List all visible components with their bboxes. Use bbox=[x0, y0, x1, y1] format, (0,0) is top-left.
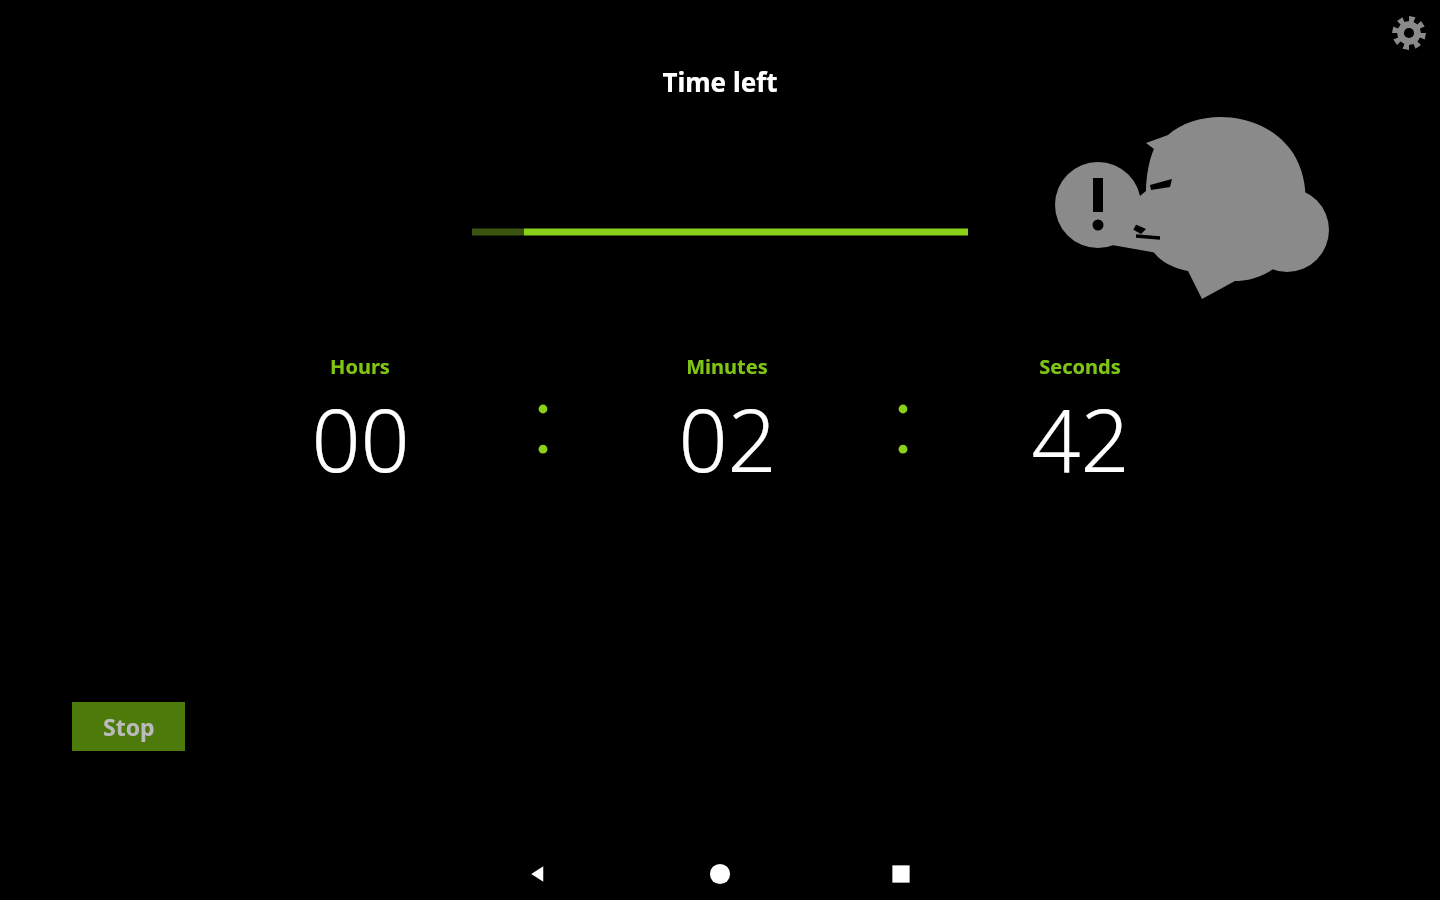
button[interactable]: Settings bbox=[1385, 9, 1433, 57]
other: Speak time bbox=[1050, 105, 1335, 300]
staticText: Stop bbox=[103, 711, 155, 742]
button[interactable]: Home bbox=[692, 852, 748, 896]
staticText: Time left bbox=[662, 64, 778, 99]
button[interactable]: Stop bbox=[72, 702, 185, 751]
staticText: Seconds bbox=[1039, 353, 1121, 380]
button[interactable]: Recents bbox=[873, 852, 929, 896]
staticText: 42 bbox=[1031, 380, 1130, 476]
staticText: Hours bbox=[330, 353, 390, 380]
staticText: 02 bbox=[678, 380, 777, 476]
staticText: Minutes bbox=[686, 353, 768, 380]
staticText: 00 bbox=[311, 380, 410, 476]
button[interactable]: Back bbox=[510, 852, 566, 896]
